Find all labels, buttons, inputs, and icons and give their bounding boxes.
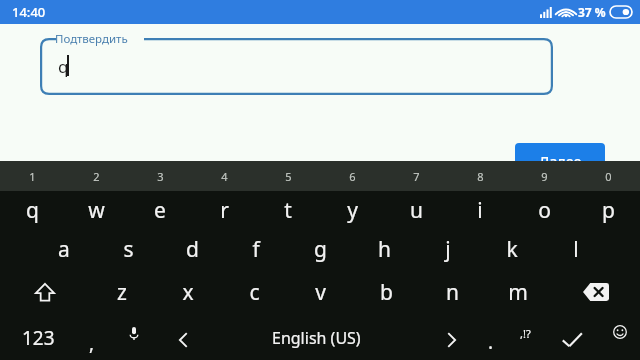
staticText: c (249, 278, 260, 307)
button[interactable]: 123 (0, 315, 76, 360)
button[interactable]: 3 (128, 161, 192, 191)
staticText: a (58, 235, 70, 264)
button[interactable]: 6 (320, 161, 384, 191)
staticText: 7 (413, 169, 420, 184)
staticText: w (88, 196, 105, 225)
button[interactable]: 5 (256, 161, 320, 191)
staticText: f (252, 235, 260, 264)
button[interactable]: w (64, 191, 128, 229)
button[interactable]: 1 (0, 161, 64, 191)
staticText: r (220, 196, 229, 225)
button[interactable]: i (448, 191, 512, 229)
staticText: g (314, 235, 327, 264)
button[interactable]: e (128, 191, 192, 229)
button[interactable]: Enter (544, 315, 599, 360)
button[interactable]: s (96, 229, 160, 269)
button[interactable]: Shift (0, 269, 89, 315)
button[interactable]: Move cursor left (160, 315, 206, 360)
button[interactable]: f (224, 229, 288, 269)
staticText: 8 (477, 169, 484, 184)
button[interactable]: y (320, 191, 384, 229)
button[interactable]: 7 (384, 161, 448, 191)
staticText: v (315, 278, 326, 307)
button[interactable]: a (32, 229, 96, 269)
staticText: 6 (349, 169, 356, 184)
staticText: p (602, 196, 615, 225)
button[interactable]: Move cursor right (427, 315, 475, 360)
staticText: e (154, 196, 166, 225)
staticText: 0 (605, 169, 612, 184)
staticText: z (117, 278, 127, 307)
staticText: 1 (29, 169, 36, 184)
staticText: u (410, 196, 423, 225)
staticText: English (US) (272, 327, 361, 349)
staticText: Подтвердить (55, 31, 128, 47)
staticText: o (538, 196, 551, 225)
staticText: . (488, 329, 494, 355)
staticText: i (477, 196, 483, 225)
button[interactable]: g (288, 229, 352, 269)
button[interactable]: Voice input (107, 315, 160, 360)
button[interactable]: 8 (448, 161, 512, 191)
button[interactable]: o (512, 191, 576, 229)
button[interactable]: n (419, 269, 485, 315)
button[interactable]: . (475, 315, 506, 360)
button[interactable]: Далее (515, 143, 605, 179)
button[interactable]: l (544, 229, 608, 269)
button[interactable]: r (192, 191, 256, 229)
staticText: q (58, 55, 69, 78)
button[interactable]: ,!? (506, 315, 544, 360)
button[interactable]: q (0, 191, 64, 229)
button[interactable]: j (416, 229, 480, 269)
staticText: ,!? (520, 326, 531, 341)
staticText: 37 % (578, 4, 606, 20)
staticText: k (506, 235, 518, 264)
button[interactable]: t (256, 191, 320, 229)
button[interactable]: c (221, 269, 287, 315)
staticText: , (89, 330, 95, 356)
staticText: 2 (93, 169, 100, 184)
button[interactable]: , (76, 315, 107, 360)
button[interactable]: x (155, 269, 221, 315)
button[interactable]: v (287, 269, 353, 315)
button[interactable]: z (89, 269, 155, 315)
staticText: b (380, 278, 393, 307)
button[interactable]: m (485, 269, 551, 315)
staticText: m (508, 278, 528, 307)
staticText: h (378, 235, 391, 264)
staticText: 5 (285, 169, 292, 184)
button[interactable]: Backspace (551, 269, 640, 315)
staticText: s (123, 235, 134, 264)
button[interactable]: d (160, 229, 224, 269)
button[interactable]: h (352, 229, 416, 269)
staticText: 4 (221, 169, 228, 184)
button[interactable]: 9 (512, 161, 576, 191)
button[interactable]: q (40, 38, 553, 95)
staticText: q (26, 196, 39, 225)
button[interactable]: b (353, 269, 419, 315)
button[interactable]: u (384, 191, 448, 229)
button[interactable]: k (480, 229, 544, 269)
button[interactable]: p (576, 191, 640, 229)
button[interactable]: 2 (64, 161, 128, 191)
staticText: Далее (539, 152, 582, 171)
staticText: 9 (541, 169, 548, 184)
staticText: n (446, 278, 459, 307)
staticText: l (573, 235, 579, 264)
button[interactable]: 0 (576, 161, 640, 191)
button[interactable]: English (US) (206, 315, 427, 360)
button[interactable]: 4 (192, 161, 256, 191)
staticText: y (347, 196, 358, 225)
staticText: t (284, 196, 292, 225)
staticText: 14:40 (12, 3, 46, 21)
staticText: j (445, 235, 451, 264)
button[interactable]: Emoji (599, 315, 640, 360)
staticText: 123 (22, 325, 55, 351)
staticText: x (182, 278, 194, 307)
staticText: d (186, 235, 199, 264)
staticText: 3 (157, 169, 164, 184)
